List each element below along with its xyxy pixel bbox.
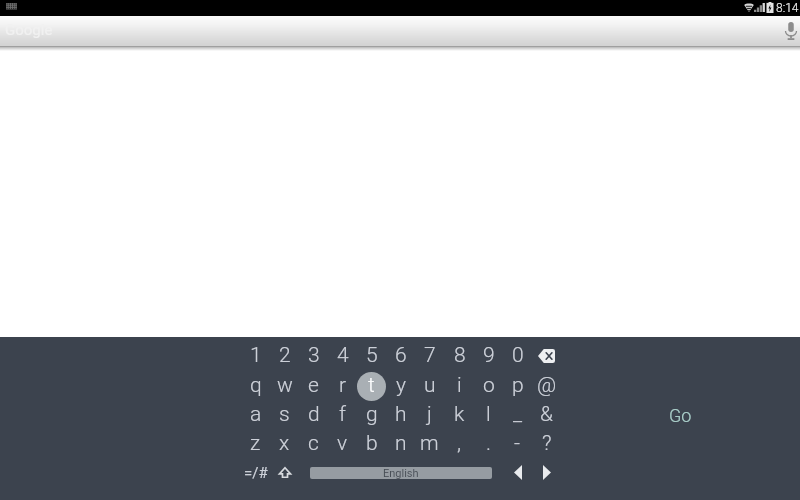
staticText: English xyxy=(383,467,419,479)
button[interactable]: 0 xyxy=(503,341,532,370)
button[interactable]: @ xyxy=(532,371,561,400)
staticText: 5 xyxy=(366,343,378,368)
staticText: - xyxy=(514,431,521,456)
button[interactable]: h xyxy=(386,400,415,429)
button[interactable]: & xyxy=(532,400,561,429)
staticText: y xyxy=(396,373,406,398)
button[interactable]: p xyxy=(503,371,532,400)
button[interactable]: Google xyxy=(0,16,800,46)
staticText: e xyxy=(308,373,319,398)
staticText: 0 xyxy=(512,343,524,368)
staticText: x xyxy=(279,431,290,456)
button[interactable]: , xyxy=(445,429,474,458)
button[interactable]: 1 xyxy=(241,341,270,370)
staticText: Go xyxy=(669,405,692,426)
staticText: 7 xyxy=(424,343,436,368)
button[interactable]: v xyxy=(328,429,357,458)
button[interactable]: a xyxy=(241,400,270,429)
staticText: . xyxy=(486,431,492,456)
button[interactable]: d xyxy=(299,400,328,429)
button[interactable]: j xyxy=(415,400,444,429)
staticText: w xyxy=(277,373,293,398)
staticText: 9 xyxy=(483,343,495,368)
button[interactable]: o xyxy=(474,371,503,400)
button[interactable]: Backspace xyxy=(532,341,561,370)
staticText: n xyxy=(395,431,407,456)
staticText: t xyxy=(368,373,375,398)
button[interactable]: u xyxy=(415,371,444,400)
button[interactable]: 6 xyxy=(386,341,415,370)
staticText: c xyxy=(308,431,319,456)
staticText: g xyxy=(366,402,378,427)
button[interactable]: z xyxy=(241,429,270,458)
button[interactable]: i xyxy=(445,371,474,400)
staticText: a xyxy=(250,402,262,427)
button[interactable]: y xyxy=(386,371,415,400)
staticText: o xyxy=(483,373,495,398)
button[interactable]: w xyxy=(270,371,299,400)
button[interactable]: 7 xyxy=(415,341,444,370)
button[interactable]: Move cursor right xyxy=(532,458,561,487)
staticText: r xyxy=(339,373,347,398)
button[interactable]: ? xyxy=(532,429,561,458)
staticText: s xyxy=(279,402,290,427)
staticText: 4 xyxy=(337,343,349,368)
button[interactable]: c xyxy=(299,429,328,458)
staticText: q xyxy=(250,373,262,398)
staticText: p xyxy=(512,373,524,398)
button[interactable]: q xyxy=(241,371,270,400)
button[interactable]: =/# xyxy=(241,458,270,487)
staticText: j xyxy=(427,402,432,427)
staticText: 2 xyxy=(279,343,291,368)
button[interactable]: English xyxy=(310,467,492,479)
button[interactable]: Move cursor left xyxy=(503,458,532,487)
button[interactable]: e xyxy=(299,371,328,400)
button[interactable]: - xyxy=(503,429,532,458)
button[interactable]: 4 xyxy=(328,341,357,370)
staticText: 6 xyxy=(395,343,407,368)
staticText: & xyxy=(540,402,553,427)
staticText: _ xyxy=(513,402,523,427)
button[interactable]: 3 xyxy=(299,341,328,370)
button[interactable]: . xyxy=(474,429,503,458)
button[interactable]: m xyxy=(415,429,444,458)
button[interactable]: _ xyxy=(503,400,532,429)
staticText: 8:14 xyxy=(776,1,799,15)
staticText: Google xyxy=(5,21,53,39)
button[interactable]: x xyxy=(270,429,299,458)
staticText: f xyxy=(339,402,346,427)
staticText: v xyxy=(337,431,348,456)
button[interactable]: Shift xyxy=(270,458,299,487)
staticText: k xyxy=(454,402,465,427)
staticText: l xyxy=(486,402,491,427)
button[interactable]: f xyxy=(328,400,357,429)
button[interactable]: 8 xyxy=(445,341,474,370)
button[interactable]: s xyxy=(270,400,299,429)
staticText: z xyxy=(250,431,261,456)
staticText: m xyxy=(420,431,439,456)
staticText: 3 xyxy=(308,343,320,368)
staticText: h xyxy=(395,402,407,427)
staticText: @ xyxy=(537,373,557,398)
button[interactable]: Go xyxy=(656,399,704,431)
staticText: d xyxy=(308,402,320,427)
button[interactable]: l xyxy=(474,400,503,429)
staticText: ? xyxy=(542,431,552,456)
button[interactable]: 9 xyxy=(474,341,503,370)
button[interactable]: 2 xyxy=(270,341,299,370)
button[interactable]: g xyxy=(357,400,386,429)
button[interactable]: k xyxy=(445,400,474,429)
button[interactable]: n xyxy=(386,429,415,458)
staticText: b xyxy=(366,431,378,456)
button[interactable]: r xyxy=(328,371,357,400)
button[interactable]: b xyxy=(357,429,386,458)
staticText: =/# xyxy=(244,464,268,482)
staticText: u xyxy=(424,373,436,398)
button[interactable]: Voice search xyxy=(780,20,800,42)
staticText: 1 xyxy=(250,343,262,368)
button[interactable]: t xyxy=(357,371,386,400)
button[interactable]: 5 xyxy=(357,341,386,370)
staticText: 8 xyxy=(454,343,466,368)
staticText: , xyxy=(457,431,462,456)
staticText: i xyxy=(457,373,462,398)
